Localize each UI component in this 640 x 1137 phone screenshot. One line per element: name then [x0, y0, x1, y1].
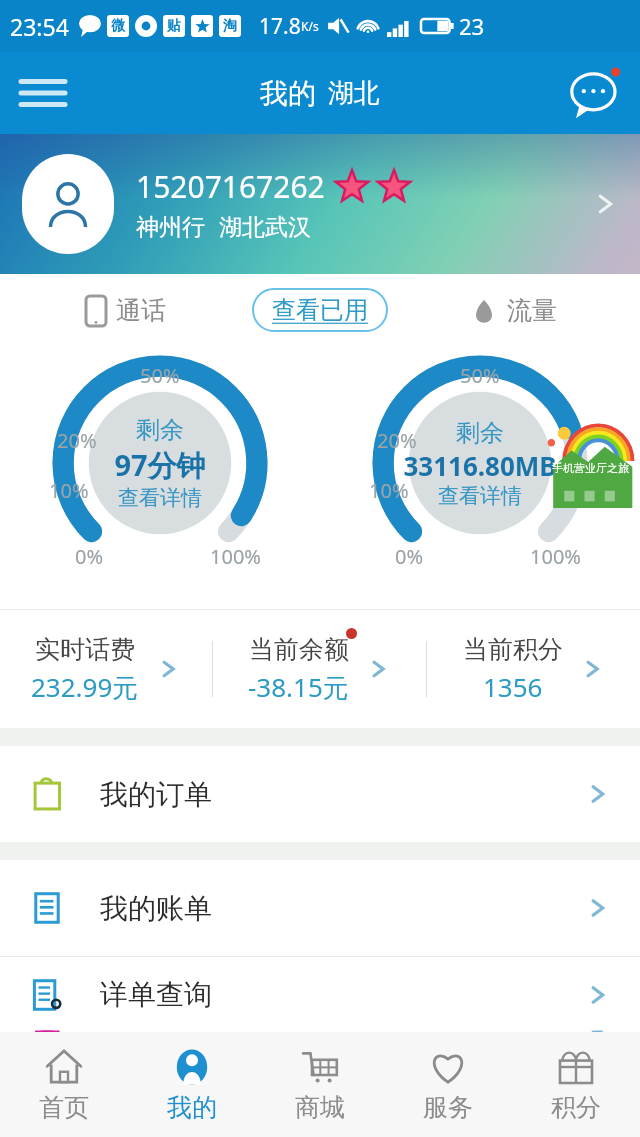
staticText: 当前余额	[249, 634, 349, 665]
button[interactable]: 我的账单	[0, 860, 640, 956]
staticText: 100%	[210, 543, 261, 570]
button[interactable]: 通话	[0, 295, 252, 326]
staticText: 详单查询	[100, 977, 212, 1012]
button[interactable]: 手机营业厅之旅	[544, 414, 636, 510]
button[interactable]: 当前余额	[213, 610, 426, 728]
button[interactable]: 首页	[0, 1032, 128, 1137]
staticText: 我的	[167, 1092, 217, 1123]
staticText: K/s	[301, 18, 319, 34]
staticText: 我的	[260, 76, 316, 111]
staticText: 商城	[295, 1092, 345, 1123]
staticText: 20%	[377, 427, 417, 454]
staticText: 97分钟	[114, 445, 206, 485]
staticText: 查看已用	[272, 295, 368, 325]
staticText: 首页	[39, 1092, 89, 1123]
staticText: 我的订单	[100, 777, 212, 812]
staticText: 23:54	[10, 11, 69, 42]
button[interactable]: 实时话费	[0, 610, 212, 728]
staticText: 232.99元	[31, 669, 139, 705]
staticText: 剩余	[456, 418, 504, 448]
staticText: 我的账单	[100, 891, 212, 926]
staticText: 100%	[530, 543, 581, 570]
button[interactable]: 详单查询	[0, 957, 640, 1032]
staticText: 17.8	[259, 12, 301, 41]
staticText: 查看详情	[118, 485, 202, 511]
button[interactable]: Menu	[14, 64, 72, 122]
button[interactable]: 商城	[256, 1032, 384, 1137]
staticText: 微	[111, 17, 125, 35]
staticText: 湖北武汉	[219, 213, 311, 242]
staticText: 20%	[57, 427, 97, 454]
staticText: 积分	[551, 1092, 601, 1123]
staticText: 贴	[167, 17, 181, 35]
staticText: 实时话费	[35, 634, 135, 665]
button[interactable]: 当前积分	[427, 610, 640, 728]
staticText: 23	[459, 11, 485, 41]
staticText: 手机营业厅之旅	[552, 461, 629, 475]
button[interactable]: 15207167262	[0, 134, 640, 274]
staticText: 33116.80MB	[403, 448, 557, 483]
button[interactable]: 服务	[384, 1032, 512, 1137]
staticText: 神州行	[136, 213, 205, 242]
staticText: 1356	[483, 669, 543, 704]
staticText: 0%	[75, 543, 104, 570]
button[interactable]: 我的订单	[0, 746, 640, 842]
staticText: 流量	[507, 295, 557, 326]
button[interactable]: Messages	[564, 63, 624, 123]
staticText: 查看详情	[438, 483, 522, 509]
staticText: 10%	[369, 477, 409, 504]
staticText: 15207167262	[136, 166, 325, 207]
button[interactable]: 查看已用	[252, 288, 388, 332]
staticText: 剩余	[136, 415, 184, 445]
staticText: 通话	[116, 295, 166, 326]
staticText: 50%	[460, 362, 500, 389]
button[interactable]: 剩余	[403, 418, 557, 509]
staticText: 0%	[395, 543, 424, 570]
button[interactable]: 积分	[512, 1032, 640, 1137]
staticText: 淘	[223, 17, 237, 35]
button[interactable]: 剩余	[114, 415, 206, 511]
staticText: 10%	[49, 477, 89, 504]
button[interactable]: 我的	[128, 1032, 256, 1137]
staticText: 50%	[140, 362, 180, 389]
staticText: 当前积分	[463, 634, 563, 665]
button[interactable]: 流量	[388, 295, 640, 326]
staticText: -38.15元	[248, 669, 349, 705]
staticText: 服务	[423, 1092, 473, 1123]
staticText: 湖北	[328, 77, 380, 110]
